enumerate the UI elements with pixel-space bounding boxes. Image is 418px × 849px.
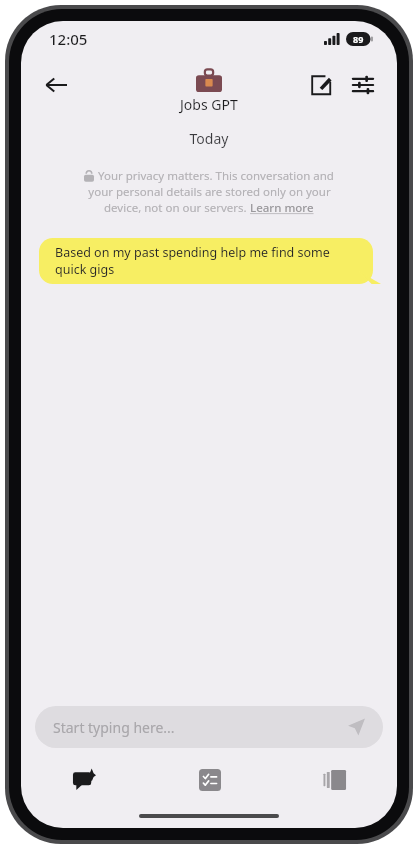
staticText: 89 (353, 33, 364, 45)
button[interactable]: Based on my past spending help me find s… (39, 238, 381, 284)
staticText: 12:05 (49, 29, 88, 49)
button[interactable]: Start typing here... (35, 706, 383, 748)
button[interactable]: Jobs GPT (180, 68, 238, 114)
button[interactable]: Cards (272, 758, 397, 802)
button[interactable]: Settings (345, 67, 381, 103)
button[interactable]: Send (343, 714, 369, 740)
staticText: your personal details are stored only on… (88, 184, 331, 200)
staticText: Jobs GPT (180, 95, 238, 114)
button[interactable]: Learn more (250, 200, 314, 216)
staticText: Start typing here... (53, 718, 175, 737)
button[interactable]: Back (35, 64, 77, 106)
staticText: Today (21, 129, 397, 148)
staticText: Based on my past spending help me find s… (55, 244, 355, 278)
button[interactable]: Tasks (147, 758, 272, 802)
staticText: device, not on our servers. (104, 200, 250, 216)
button[interactable]: Compose (303, 67, 339, 103)
staticText: Your privacy matters. This conversation … (98, 168, 334, 184)
button[interactable]: Chat (21, 758, 147, 802)
